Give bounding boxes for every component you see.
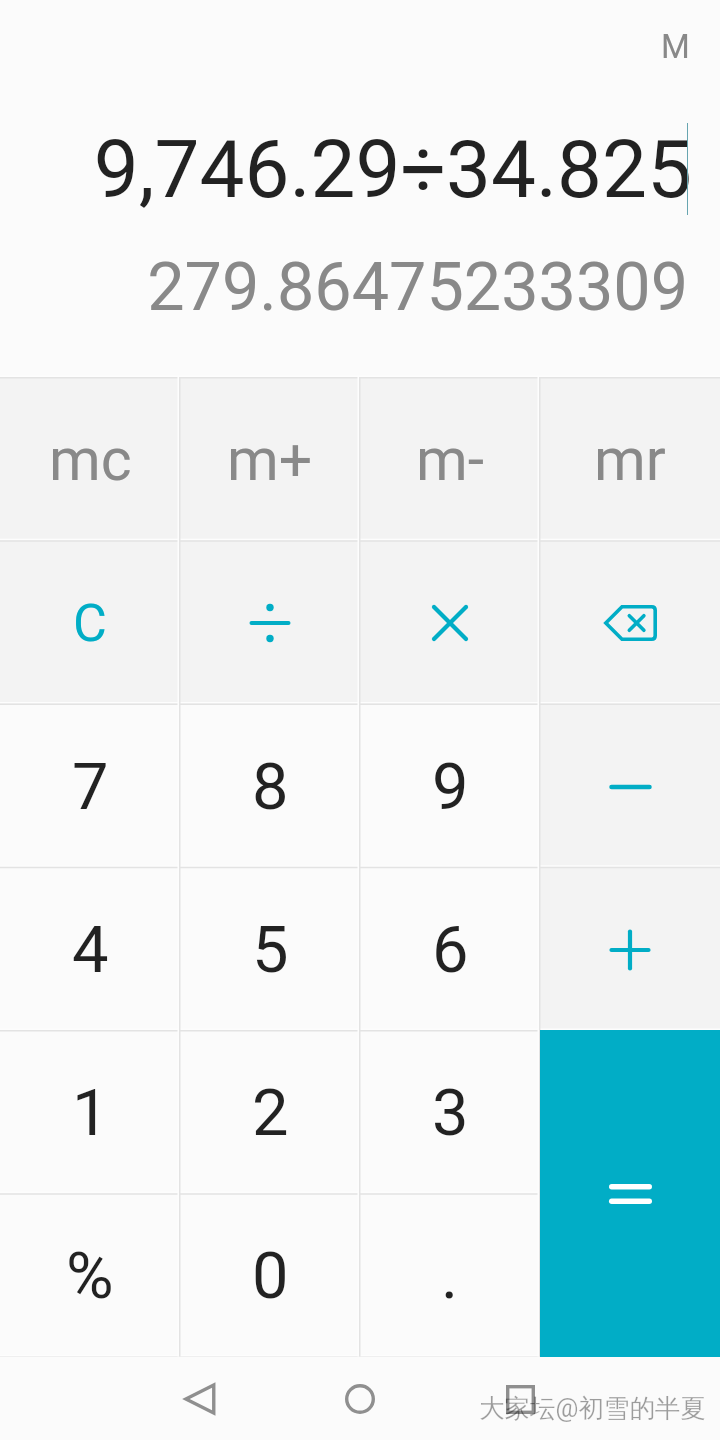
button[interactable]: Recent apps bbox=[480, 1357, 560, 1440]
button[interactable]: C bbox=[0, 541, 180, 705]
button[interactable]: Home bbox=[320, 1357, 400, 1440]
button[interactable]: Equals bbox=[540, 1030, 720, 1357]
staticText: 8 bbox=[252, 749, 289, 825]
button[interactable]: 4 bbox=[0, 868, 180, 1031]
staticText: 大家坛@初雪的半夏 bbox=[479, 1392, 706, 1424]
button[interactable]: mr bbox=[540, 377, 720, 541]
staticText: 9 bbox=[432, 749, 469, 825]
staticText: 6 bbox=[432, 912, 469, 988]
button[interactable]: 1 bbox=[0, 1031, 180, 1194]
staticText: 0 bbox=[252, 1238, 289, 1314]
button[interactable]: 6 bbox=[360, 868, 540, 1031]
staticText: C bbox=[73, 593, 107, 654]
staticText: 9,746.29÷34.825 bbox=[0, 123, 692, 217]
button[interactable]: mc bbox=[0, 377, 180, 541]
button[interactable]: % bbox=[0, 1194, 180, 1357]
staticText: . bbox=[441, 1238, 459, 1314]
button[interactable]: 0 bbox=[180, 1194, 360, 1357]
button[interactable]: Backspace bbox=[540, 541, 720, 705]
button[interactable]: Multiply bbox=[360, 541, 540, 705]
staticText: 4 bbox=[72, 912, 109, 988]
staticText: 2 bbox=[252, 1075, 289, 1151]
button[interactable]: 8 bbox=[180, 705, 360, 868]
button[interactable]: 5 bbox=[180, 868, 360, 1031]
button[interactable]: m+ bbox=[180, 377, 360, 541]
staticText: M bbox=[661, 27, 690, 66]
staticText: 5 bbox=[252, 912, 289, 988]
button[interactable]: Divide bbox=[180, 541, 360, 705]
staticText: m- bbox=[416, 425, 485, 494]
staticText: mc bbox=[49, 425, 132, 494]
button[interactable]: Minus bbox=[540, 705, 720, 868]
button[interactable]: Plus bbox=[540, 868, 720, 1031]
button[interactable]: m- bbox=[360, 377, 540, 541]
staticText: % bbox=[66, 1238, 114, 1314]
button[interactable]: 7 bbox=[0, 705, 180, 868]
staticText: 3 bbox=[432, 1075, 469, 1151]
staticText: m+ bbox=[227, 425, 313, 494]
button[interactable]: . bbox=[360, 1194, 540, 1357]
button[interactable]: Back bbox=[160, 1357, 240, 1440]
staticText: 279.86475233309 bbox=[0, 248, 688, 326]
button[interactable]: 9 bbox=[360, 705, 540, 868]
staticText: 1 bbox=[72, 1075, 109, 1151]
button[interactable]: 2 bbox=[180, 1031, 360, 1194]
button[interactable]: 3 bbox=[360, 1031, 540, 1194]
staticText: 7 bbox=[72, 749, 109, 825]
staticText: mr bbox=[594, 425, 666, 494]
